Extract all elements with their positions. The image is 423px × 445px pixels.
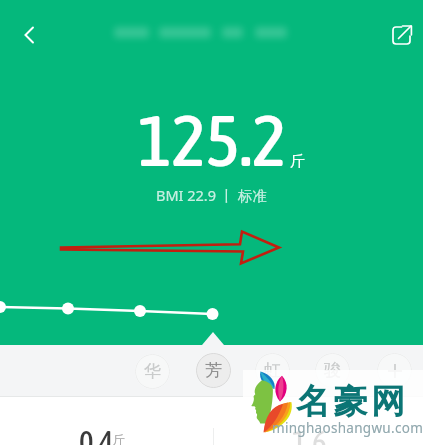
staticText: minghaoshangwu.com bbox=[272, 419, 423, 437]
staticText: 名豪网 bbox=[296, 380, 409, 423]
staticText: 芳 bbox=[205, 360, 222, 381]
staticText: 125.2 bbox=[138, 99, 287, 182]
staticText: 虹 bbox=[264, 360, 281, 381]
button[interactable]: 芳 bbox=[196, 353, 231, 388]
staticText: 斤 bbox=[113, 432, 125, 445]
staticText: 华 bbox=[144, 361, 161, 382]
staticText: 斤 bbox=[290, 152, 305, 171]
staticText: 骏 bbox=[324, 360, 341, 381]
button[interactable]: Share bbox=[379, 13, 419, 53]
button[interactable]: 骏 bbox=[315, 353, 350, 388]
button[interactable]: Add member bbox=[377, 353, 412, 388]
button[interactable]: Back bbox=[6, 12, 52, 58]
staticText: 1.6 bbox=[292, 424, 327, 445]
button[interactable]: 虹 bbox=[255, 353, 290, 388]
staticText: BMI 22.9 丨 标准 bbox=[156, 185, 268, 205]
staticText: 0.4 bbox=[79, 424, 114, 445]
button[interactable]: 华 bbox=[135, 354, 170, 389]
